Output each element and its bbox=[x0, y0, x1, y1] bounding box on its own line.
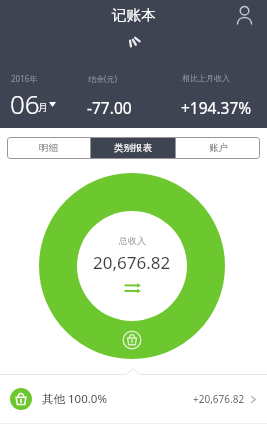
button[interactable]: 明细 bbox=[7, 137, 90, 159]
staticText: 其他 100.0% bbox=[42, 391, 107, 407]
staticText: 相比上月收入 bbox=[182, 73, 230, 83]
staticText: -77.00 bbox=[87, 97, 132, 118]
button[interactable]: Category bbox=[122, 330, 142, 350]
button[interactable]: Account bbox=[232, 3, 256, 27]
staticText: +194.37% bbox=[181, 97, 252, 118]
staticText: 2016年 bbox=[11, 73, 38, 84]
button[interactable]: 账户 bbox=[176, 137, 260, 159]
staticText: +20,676.82 bbox=[193, 392, 245, 406]
staticText: 账户 bbox=[209, 142, 228, 154]
staticText: 结余(元) bbox=[88, 73, 117, 84]
staticText: 20,676.82 bbox=[93, 251, 171, 274]
staticText: 明细 bbox=[39, 142, 58, 154]
staticText: 记账本 bbox=[112, 6, 156, 24]
staticText: 总收入 bbox=[119, 235, 146, 246]
staticText: 月 bbox=[38, 101, 48, 114]
staticText: 06 bbox=[10, 86, 40, 121]
staticText: 类别报表 bbox=[114, 142, 152, 154]
button[interactable]: 类别报表 bbox=[91, 137, 175, 159]
button[interactable]: 其他 100.0% bbox=[0, 375, 267, 423]
